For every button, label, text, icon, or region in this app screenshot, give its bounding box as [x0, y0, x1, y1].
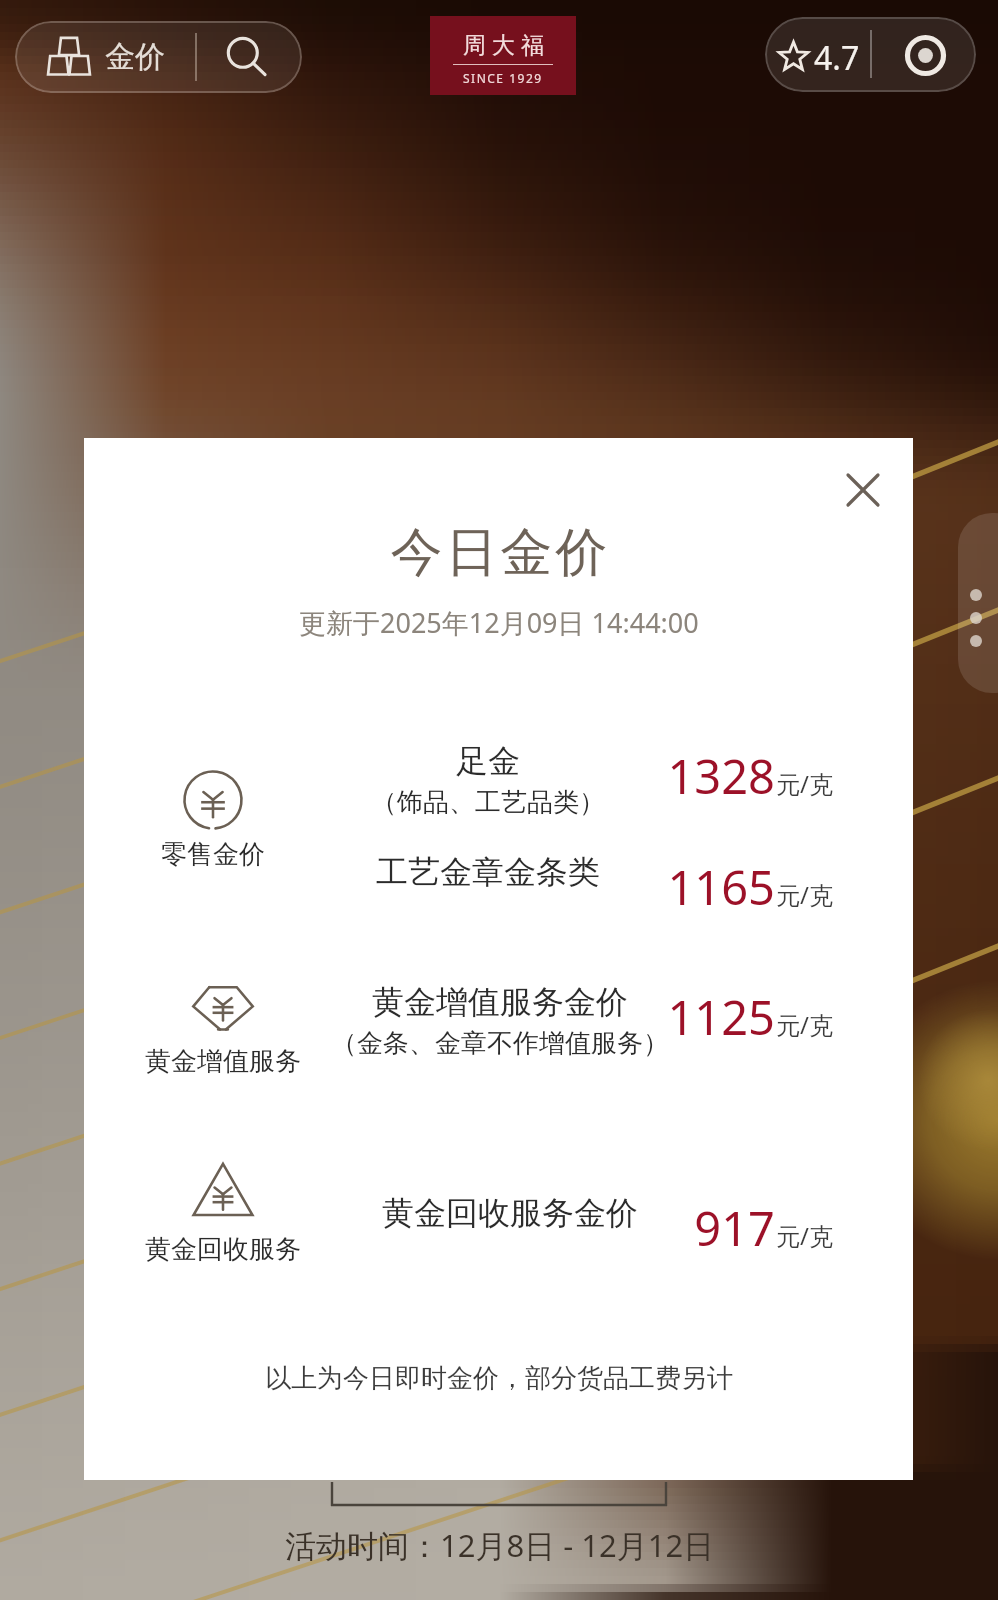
staticText: 零售金价 [161, 838, 265, 871]
staticText: 周 大 福 [463, 28, 544, 59]
staticText: （饰品、工艺品类） [371, 786, 605, 819]
button[interactable]: Close [836, 463, 890, 517]
staticText: 4.7 [814, 36, 860, 80]
staticText: （金条、金章不作增值服务） [331, 1027, 669, 1060]
staticText: 黄金增值服务 [145, 1045, 301, 1078]
staticText: 今日金价 [389, 520, 609, 586]
staticText: 1125 [667, 985, 775, 1049]
staticText: 元/克 [776, 767, 833, 800]
staticText: 黄金回收服务金价 [382, 1193, 638, 1233]
staticText: 1328 [667, 744, 775, 808]
staticText: 黄金增值服务金价 [372, 982, 628, 1022]
staticText: 以上为今日即时金价，部分货品工费另计 [265, 1362, 733, 1395]
staticText: 元/克 [776, 878, 833, 911]
staticText: 金价 [105, 38, 165, 76]
staticText: 1165 [667, 855, 775, 919]
staticText: 黄金回收服务 [145, 1233, 301, 1266]
button[interactable]: 周 大 福 [430, 16, 576, 95]
staticText: SINCE 1929 [463, 70, 543, 86]
staticText: 足金 [456, 741, 520, 781]
staticText: 元/克 [776, 1008, 833, 1041]
staticText: 元/克 [776, 1219, 833, 1252]
staticText: 工艺金章金条类 [376, 852, 600, 892]
button[interactable]: 金价 [15, 21, 302, 93]
staticText: 917 [694, 1196, 775, 1260]
staticText: 更新于2025年12月09日 14:44:00 [299, 604, 699, 641]
button[interactable]: More options [958, 513, 998, 693]
button[interactable]: More [891, 17, 976, 92]
staticText: 活动时间：12月8日 - 12月12日 [285, 1524, 715, 1566]
button[interactable]: Rating 4.7 [765, 17, 870, 92]
